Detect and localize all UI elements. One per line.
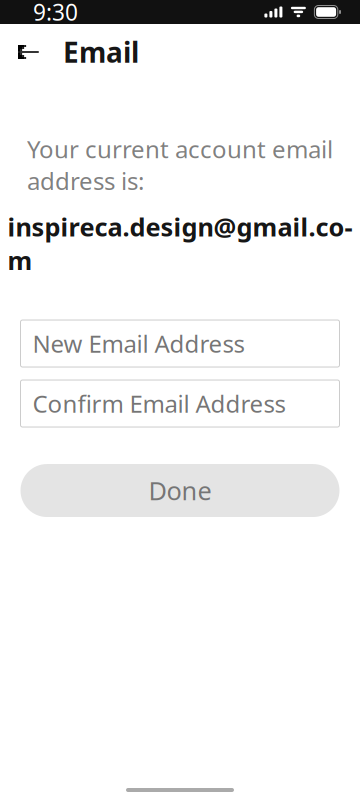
staticText: 9:30 bbox=[33, 0, 78, 27]
staticText: inspireca.design@gmail.com bbox=[7, 210, 352, 277]
staticText: Done bbox=[148, 474, 211, 507]
button[interactable]: New Email Address bbox=[20, 320, 339, 367]
button[interactable]: Confirm Email Address bbox=[20, 380, 339, 427]
button[interactable]: Back bbox=[7, 30, 51, 74]
staticText: Confirm Email Address bbox=[32, 388, 285, 419]
staticText: New Email Address bbox=[32, 328, 244, 359]
button[interactable]: Done bbox=[20, 464, 339, 517]
staticText: Email bbox=[63, 33, 139, 71]
staticText: Your current account email address is: bbox=[27, 133, 333, 197]
